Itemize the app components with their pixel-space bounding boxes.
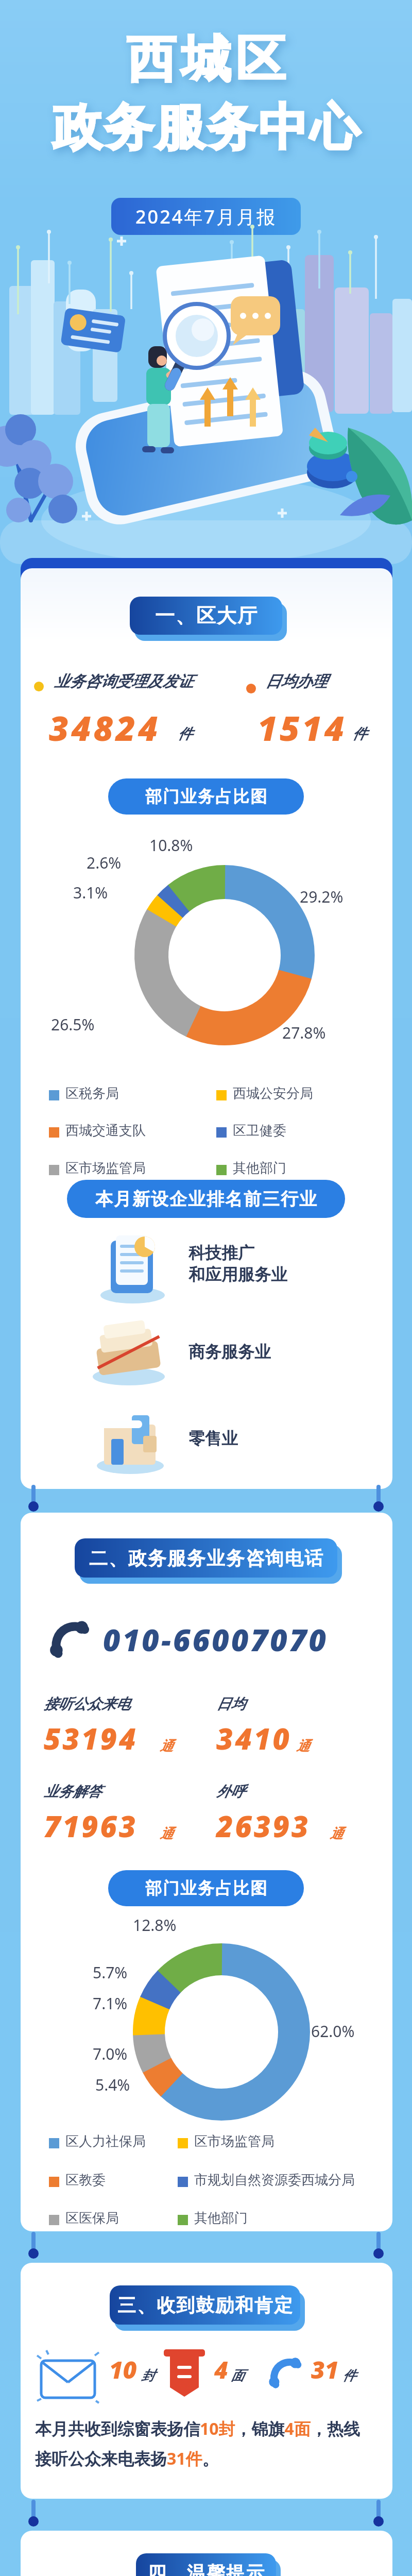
staticText: 34824	[49, 704, 161, 751]
staticText: 3.1%	[73, 882, 108, 903]
staticText: 业务解答	[44, 1783, 101, 1801]
staticText: 7.0%	[93, 2043, 128, 2064]
staticText: 通	[160, 1738, 173, 1755]
staticText: 件	[352, 725, 367, 743]
staticText: 区市场监管局	[194, 2133, 274, 2150]
button[interactable]: 二、政务服务业务咨询电话	[75, 1538, 337, 1578]
staticText: 市规划自然资源委西城分局	[194, 2172, 355, 2189]
staticText: 27.8%	[282, 1022, 326, 1043]
staticText: 二、政务服务业务咨询电话	[89, 1547, 323, 1570]
staticText: 面	[231, 2367, 244, 2384]
staticText: 区医保局	[65, 2210, 119, 2227]
staticText: 件	[178, 725, 192, 743]
staticText: 和应用服务业	[188, 1264, 287, 1285]
staticText: 其他部门	[233, 1160, 286, 1177]
staticText: 通	[160, 1825, 173, 1842]
staticText: 71963	[44, 1806, 138, 1845]
staticText: 三、收到鼓励和肯定	[117, 2294, 293, 2317]
button[interactable]: 部门业务占比图	[108, 1870, 304, 1906]
staticText: 31	[311, 2353, 339, 2386]
staticText: 62.0%	[311, 2021, 355, 2042]
staticText: 53194	[44, 1719, 138, 1758]
staticText: 29.2%	[300, 886, 344, 907]
staticText: 业务咨询受理及发证	[54, 672, 193, 691]
staticText: 西城区	[124, 29, 288, 91]
staticText: 4	[214, 2353, 228, 2386]
staticText: 区市场监管局	[65, 1160, 146, 1177]
staticText: 1514	[257, 704, 347, 751]
staticText: 5.7%	[93, 1962, 128, 1983]
button[interactable]: 本月新设企业排名前三行业	[67, 1180, 345, 1218]
staticText: 科技推广	[188, 1243, 254, 1263]
staticText: 其他部门	[194, 2210, 248, 2227]
button[interactable]: 部门业务占比图	[108, 778, 304, 815]
staticText: 10	[109, 2353, 137, 2386]
staticText: 5.4%	[95, 2074, 130, 2095]
staticText: 封	[141, 2367, 154, 2384]
staticText: 2024年7月月报	[135, 204, 277, 229]
staticText: 部门业务占比图	[145, 786, 267, 807]
staticText: 通	[330, 1825, 343, 1842]
staticText: 本月新设企业排名前三行业	[95, 1188, 317, 1210]
staticText: 26.5%	[51, 1014, 95, 1035]
button[interactable]: 四、温馨提示	[136, 2553, 276, 2576]
staticText: 一、区大厅	[154, 603, 257, 628]
staticText: 区人力社保局	[65, 2133, 146, 2150]
staticText: 接听公众来电	[44, 1695, 130, 1713]
staticText: 区卫健委	[233, 1122, 286, 1139]
staticText: 26393	[216, 1806, 311, 1845]
staticText: 12.8%	[133, 1914, 177, 1936]
staticText: 件	[342, 2367, 356, 2384]
staticText: 外呼	[216, 1783, 245, 1801]
staticText: 政务服务中心	[51, 97, 360, 159]
button[interactable]: 2024年7月月报	[111, 198, 301, 235]
staticText: 10.8%	[149, 835, 193, 856]
staticText: 部门业务占比图	[145, 1878, 267, 1899]
staticText: 日均	[216, 1695, 245, 1713]
staticText: 商务服务业	[188, 1342, 271, 1362]
staticText: 7.1%	[93, 1993, 128, 2014]
staticText: 通	[296, 1738, 310, 1755]
staticText: 西城交通支队	[65, 1122, 146, 1139]
staticText: 2.6%	[87, 852, 122, 873]
button[interactable]: 三、收到鼓励和肯定	[110, 2285, 300, 2325]
staticText: 西城公安分局	[233, 1085, 313, 1102]
staticText: 四、温馨提示	[147, 2562, 265, 2576]
staticText: 010-66007070	[103, 1619, 329, 1660]
staticText: 本月共收到综窗表扬信10封，锦旗4面，热线接听公众来电表扬31件。	[35, 2417, 375, 2469]
staticText: 区教委	[65, 2172, 106, 2189]
staticText: 3410	[216, 1719, 291, 1758]
staticText: 区税务局	[65, 1085, 119, 1102]
button[interactable]: 一、区大厅	[130, 597, 282, 635]
staticText: 零售业	[188, 1428, 238, 1449]
staticText: 日均办理	[265, 672, 327, 691]
